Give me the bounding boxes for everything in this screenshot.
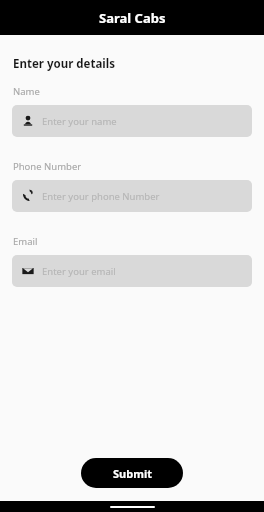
other: Name xyxy=(22,115,34,127)
staticText: Email xyxy=(13,235,38,248)
button[interactable]: Email xyxy=(12,255,252,287)
staticText: Enter your phone Number xyxy=(42,190,160,203)
button[interactable]: Submit xyxy=(81,458,183,488)
staticText: Enter your details xyxy=(13,56,115,72)
button[interactable]: Phone number xyxy=(12,180,252,212)
other: Home gesture indicator xyxy=(110,506,155,508)
button[interactable]: Name xyxy=(12,105,252,137)
staticText: Enter your email xyxy=(42,265,116,278)
staticText: Phone Number xyxy=(13,160,82,173)
other: Phone number xyxy=(22,190,34,202)
staticText: Submit xyxy=(113,466,152,481)
staticText: Enter your name xyxy=(42,115,117,128)
other: Email xyxy=(22,265,34,277)
staticText: Saral Cabs xyxy=(99,9,166,27)
staticText: Name xyxy=(13,85,40,98)
